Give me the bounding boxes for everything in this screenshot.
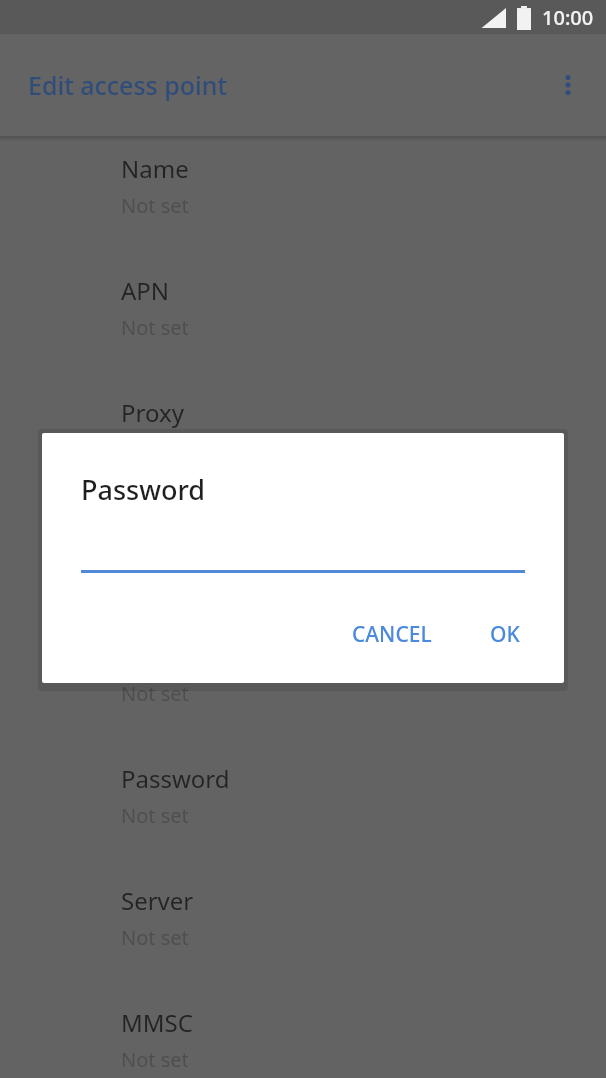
staticText: Password: [81, 471, 206, 508]
button[interactable]: Server: [0, 872, 606, 994]
button[interactable]: Proxy: [0, 384, 606, 506]
staticText: Not set: [121, 802, 189, 829]
staticText: Proxy: [121, 396, 184, 429]
staticText: OK: [490, 620, 520, 649]
button[interactable]: Password: [0, 750, 606, 872]
staticText: APN: [121, 274, 170, 307]
staticText: Server: [121, 884, 194, 917]
button[interactable]: Name: [0, 140, 606, 262]
staticText: MMSC: [121, 1006, 193, 1039]
staticText: Edit access point: [28, 68, 228, 102]
button[interactable]: More options: [544, 61, 592, 109]
button[interactable]: MMSC: [0, 994, 606, 1078]
staticText: Password: [121, 762, 230, 795]
button[interactable]: OK: [476, 610, 534, 659]
staticText: Not set: [121, 192, 189, 219]
staticText: Not set: [121, 1046, 189, 1073]
button[interactable]: Username: [0, 628, 606, 750]
staticText: Not set: [121, 314, 189, 341]
staticText: CANCEL: [352, 620, 432, 649]
staticText: Not set: [121, 924, 189, 951]
button[interactable]: CANCEL: [338, 610, 446, 659]
button[interactable]: APN: [0, 262, 606, 384]
button[interactable]: Port: [0, 506, 606, 628]
staticText: Not set: [121, 680, 189, 707]
staticText: 10:00: [542, 4, 594, 31]
staticText: Name: [121, 152, 189, 185]
staticText: Not set: [121, 558, 189, 585]
